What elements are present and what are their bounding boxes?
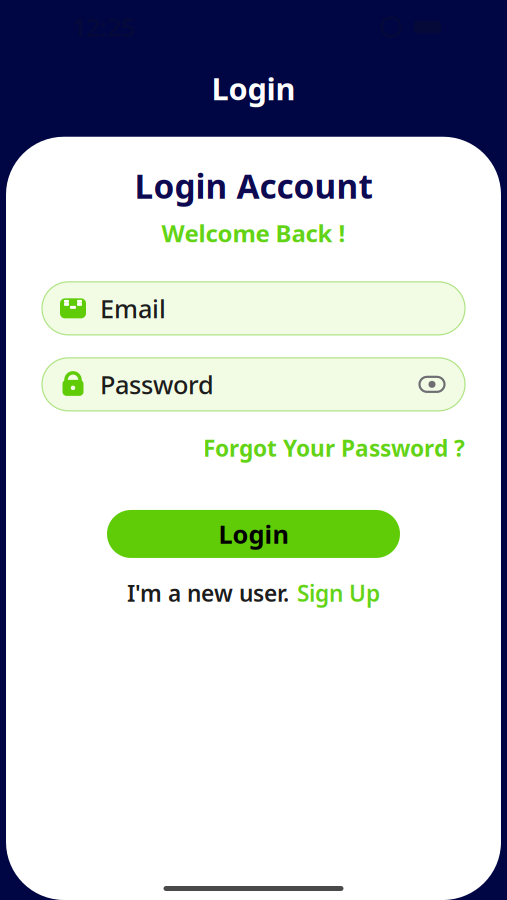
staticText: 12:25 <box>72 10 135 44</box>
staticText: I'm a new user. <box>127 578 289 608</box>
staticText: Forgot Your Password ? <box>203 433 465 463</box>
button[interactable]: Login <box>107 510 400 558</box>
button[interactable]: Show password <box>419 366 465 402</box>
button[interactable]: Email <box>42 282 465 335</box>
button[interactable]: Sign Up <box>297 578 380 608</box>
staticText: Login <box>211 68 295 109</box>
staticText: Password <box>100 367 214 401</box>
staticText: Login Account <box>134 164 372 208</box>
staticText: Login <box>218 517 288 551</box>
staticText: Sign Up <box>297 578 380 608</box>
button[interactable]: Forgot Your Password ? <box>42 411 465 463</box>
button[interactable]: Password <box>42 358 465 411</box>
staticText: Email <box>100 291 166 325</box>
staticText: Welcome Back ! <box>161 217 345 249</box>
